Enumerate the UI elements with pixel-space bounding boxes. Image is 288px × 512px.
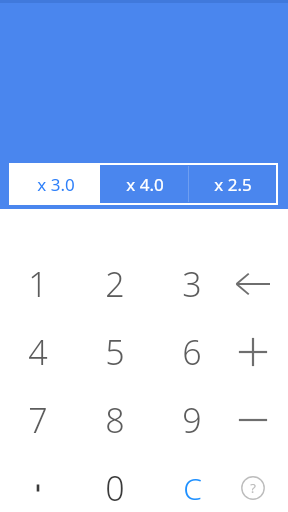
staticText: 6 (182, 329, 202, 375)
staticText: 3 (182, 261, 202, 307)
button[interactable]: 3 (161, 256, 223, 312)
button[interactable]: 9 (161, 392, 223, 448)
button[interactable]: 0 (84, 464, 146, 512)
staticText: x 4.0 (126, 173, 164, 196)
button[interactable]: 8 (84, 392, 146, 448)
button[interactable]: 1 (7, 256, 69, 312)
button[interactable]: Decimal separator (7, 464, 69, 512)
staticText: x 2.5 (214, 173, 252, 196)
button[interactable]: Minus (222, 392, 284, 448)
staticText: x 3.0 (37, 173, 75, 196)
staticText: 7 (28, 397, 48, 443)
button[interactable]: C (161, 464, 223, 512)
staticText: 5 (105, 329, 125, 375)
button[interactable]: 5 (84, 324, 146, 380)
button[interactable]: x 2.5 (189, 164, 276, 204)
button[interactable]: 4 (7, 324, 69, 380)
button[interactable]: 6 (161, 324, 223, 380)
button[interactable]: 7 (7, 392, 69, 448)
button[interactable]: x 3.0 (11, 165, 100, 203)
staticText: ? (250, 479, 256, 497)
staticText: 1 (28, 261, 48, 307)
staticText: C (183, 468, 202, 509)
staticText: 2 (105, 261, 125, 307)
staticText: 0 (105, 465, 125, 511)
button[interactable]: Help (222, 464, 284, 512)
button[interactable]: Backspace (222, 256, 284, 312)
staticText: 8 (105, 397, 125, 443)
staticText: 9 (182, 397, 202, 443)
button[interactable]: Plus (222, 324, 284, 380)
staticText: 4 (28, 329, 48, 375)
button[interactable]: 2 (84, 256, 146, 312)
button[interactable]: x 4.0 (100, 164, 189, 204)
